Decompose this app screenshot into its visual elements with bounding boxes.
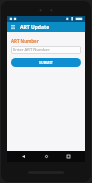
staticText: ART Number	[11, 38, 39, 44]
button[interactable]: Enter ART Number	[11, 46, 81, 54]
button[interactable]: Home	[41, 151, 52, 162]
button[interactable]: Back	[18, 151, 29, 162]
staticText: SUBMIT	[39, 60, 53, 65]
staticText: Enter ART Number	[13, 47, 50, 53]
button[interactable]: Recent apps	[63, 151, 74, 162]
button[interactable]: SUBMIT	[11, 58, 81, 67]
button[interactable]: Open navigation drawer	[9, 23, 17, 31]
staticText: ART Update	[20, 24, 50, 31]
